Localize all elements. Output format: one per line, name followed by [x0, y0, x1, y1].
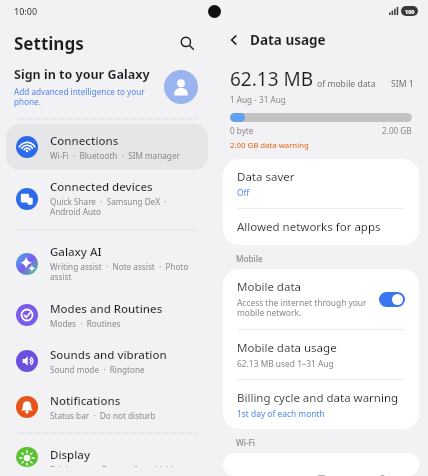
- staticText: Off: [237, 187, 250, 198]
- staticText: 2.00 GB data warning: [230, 140, 309, 151]
- button[interactable]: Billing cycle and data warning: [223, 380, 419, 429]
- staticText: Display: [50, 447, 90, 463]
- staticText: Galaxy AI: [50, 244, 102, 260]
- staticText: 1 Aug - 31 Aug: [230, 94, 286, 105]
- staticText: 10:00: [14, 5, 38, 17]
- button[interactable]: Mobile data: [223, 269, 419, 329]
- staticText: Data saver: [237, 169, 295, 185]
- button[interactable]: Notifications: [6, 384, 208, 430]
- staticText: Billing cycle and data warning: [237, 390, 399, 406]
- button[interactable]: Connected devices: [6, 170, 208, 227]
- staticText: Wi-Fi · Bluetooth · SIM manager: [50, 150, 180, 161]
- staticText: 2.00 GB: [382, 125, 412, 136]
- staticText: Notifications: [50, 393, 121, 409]
- staticText: Connected devices: [50, 179, 153, 195]
- staticText: Sign in to your Galaxy: [14, 66, 150, 83]
- staticText: Status bar · Do not disturb: [50, 410, 156, 421]
- button[interactable]: Display: [6, 438, 208, 476]
- staticText: 62.13 MB: [230, 66, 314, 92]
- button[interactable]: Wi-Fi data usage: [223, 453, 419, 476]
- button[interactable]: Sign in to your Galaxy: [0, 62, 214, 116]
- button[interactable]: Modes and Routines: [6, 292, 208, 338]
- staticText: Quick Share · Samsung DeX · Android Auto: [50, 196, 198, 218]
- staticText: 1st day of each month: [237, 408, 325, 419]
- staticText: SIM 1: [391, 78, 414, 90]
- staticText: Sounds and vibration: [50, 347, 167, 363]
- staticText: Connections: [50, 133, 119, 149]
- staticText: 62.13 MB used 1–31 Aug: [237, 358, 334, 369]
- staticText: Sound mode · Ringtone: [50, 364, 145, 375]
- staticText: of mobile data: [317, 78, 376, 90]
- staticText: Mobile data usage: [237, 340, 337, 356]
- button[interactable]: Mobile data toggle: [379, 292, 405, 307]
- staticText: Allowed networks for apps: [237, 219, 381, 235]
- button[interactable]: Galaxy AI: [6, 235, 208, 292]
- button[interactable]: Sounds and vibration: [6, 338, 208, 384]
- staticText: Wi-Fi: [236, 437, 256, 448]
- staticText: Brightness · Eye comfort shield · Naviga…: [50, 464, 198, 467]
- staticText: Writing assist · Note assist · Photo ass…: [50, 261, 198, 283]
- staticText: 0 byte: [230, 125, 382, 136]
- staticText: Modes · Routines: [50, 318, 121, 329]
- button[interactable]: Mobile data usage: [223, 330, 419, 379]
- button[interactable]: Back: [222, 28, 246, 52]
- staticText: 100: [405, 8, 415, 15]
- staticText: Mobile data: [237, 279, 301, 295]
- button[interactable]: Allowed networks for apps: [223, 209, 419, 245]
- button[interactable]: Data saver: [223, 159, 419, 208]
- button[interactable]: Search: [174, 30, 200, 56]
- staticText: Mobile: [236, 253, 263, 264]
- staticText: Settings: [14, 32, 174, 55]
- button[interactable]: Connections: [6, 124, 208, 170]
- staticText: Add advanced intelligence to your phone.: [14, 86, 164, 108]
- staticText: Data usage: [250, 31, 326, 49]
- staticText: Access the internet through your mobile …: [237, 297, 371, 319]
- staticText: Modes and Routines: [50, 301, 163, 317]
